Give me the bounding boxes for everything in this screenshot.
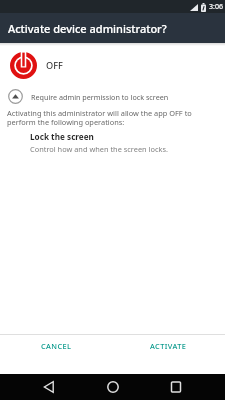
staticText: Activating this administrator will allow… xyxy=(7,108,192,127)
staticText: ACTIVATE xyxy=(150,341,187,351)
staticText: 3:06 xyxy=(209,2,223,12)
button[interactable]: Require admin permission to lock screen xyxy=(8,89,225,104)
button[interactable] xyxy=(100,374,126,400)
staticText: Lock the screen xyxy=(30,131,94,142)
staticText: Activate device administrator? xyxy=(8,21,167,36)
button[interactable]: ACTIVATE xyxy=(112,335,225,356)
staticText: Require admin permission to lock screen xyxy=(31,92,169,102)
staticText: CANCEL xyxy=(41,341,72,351)
button[interactable] xyxy=(36,374,62,400)
staticText: OFF xyxy=(46,59,63,72)
button[interactable]: CANCEL xyxy=(0,335,112,356)
button[interactable] xyxy=(163,374,189,400)
staticText: Control how and when the screen locks. xyxy=(30,144,168,154)
